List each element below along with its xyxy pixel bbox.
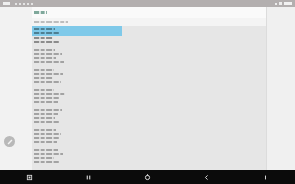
button[interactable] (32, 7, 266, 18)
button[interactable]: Home (118, 170, 177, 184)
button[interactable]: Back (177, 170, 236, 184)
button[interactable]: Pause (59, 170, 118, 184)
button[interactable]: Edit (4, 136, 15, 147)
button[interactable]: Recents (0, 170, 59, 184)
button[interactable]: Menu (236, 170, 295, 184)
button[interactable] (32, 26, 122, 36)
